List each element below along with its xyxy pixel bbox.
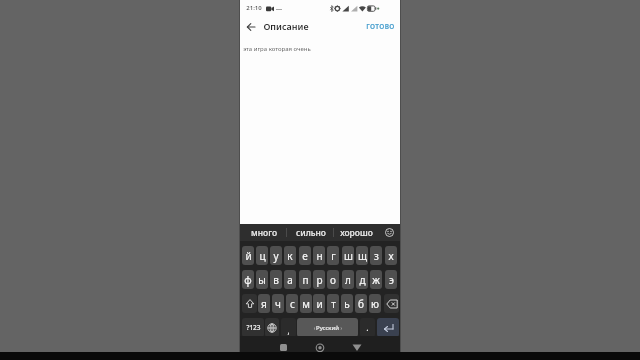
staticText: хорошо: [340, 227, 373, 239]
button[interactable]: р: [313, 270, 325, 289]
button[interactable]: [244, 20, 258, 33]
staticText: ж: [372, 273, 380, 287]
button[interactable]: д: [356, 270, 368, 289]
button[interactable]: и: [313, 294, 325, 313]
button[interactable]: б: [355, 294, 367, 313]
staticText: н: [316, 249, 323, 263]
button[interactable]: [377, 318, 399, 337]
button[interactable]: много: [240, 224, 287, 241]
staticText: я: [261, 297, 267, 311]
staticText: п: [302, 273, 309, 287]
staticText: ?123: [246, 323, 261, 332]
staticText: е: [302, 249, 308, 263]
staticText: .: [366, 321, 369, 333]
staticText: л: [345, 273, 351, 287]
button[interactable]: ‹: [297, 318, 358, 337]
staticText: э: [389, 273, 394, 287]
staticText: ю: [371, 297, 379, 311]
staticText: Описание: [263, 20, 309, 32]
button[interactable]: м: [300, 294, 312, 313]
staticText: з: [374, 249, 379, 263]
button[interactable]: к: [284, 246, 296, 265]
staticText: много: [251, 227, 277, 239]
button[interactable]: н: [313, 246, 325, 265]
staticText: ,: [287, 325, 290, 336]
button[interactable]: й: [242, 246, 254, 265]
button[interactable]: [242, 294, 257, 313]
staticText: сильно: [296, 227, 326, 239]
button[interactable]: л: [342, 270, 354, 289]
button[interactable]: с: [286, 294, 298, 313]
staticText: ч: [275, 297, 281, 311]
staticText: щ: [358, 249, 367, 263]
staticText: ф: [244, 273, 252, 287]
button[interactable]: ?123: [242, 318, 264, 337]
button[interactable]: ,: [281, 318, 296, 337]
button[interactable]: э: [385, 270, 397, 289]
staticText: с: [290, 297, 295, 311]
button[interactable]: г: [327, 246, 339, 265]
button[interactable]: [279, 343, 288, 352]
button[interactable]: хорошо: [333, 224, 380, 241]
button[interactable]: .: [360, 318, 375, 337]
staticText: й: [245, 249, 252, 263]
button[interactable]: о: [327, 270, 339, 289]
staticText: ГОТОВО: [366, 22, 395, 31]
staticText: в: [273, 273, 279, 287]
button[interactable]: [383, 227, 395, 238]
button[interactable]: щ: [356, 246, 368, 265]
staticText: у: [273, 249, 279, 263]
staticText: ш: [344, 249, 353, 263]
button[interactable]: [265, 318, 279, 337]
staticText: г: [331, 249, 336, 263]
button[interactable]: ю: [369, 294, 381, 313]
staticText: ь: [344, 297, 350, 311]
staticText: а: [287, 273, 293, 287]
staticText: ›: [339, 325, 342, 332]
staticText: 21:10: [246, 4, 262, 12]
button[interactable]: ГОТОВО: [362, 19, 398, 33]
button[interactable]: а: [284, 270, 296, 289]
staticText: ц: [259, 249, 266, 263]
staticText: о: [330, 273, 336, 287]
staticText: б: [358, 297, 364, 311]
button[interactable]: сильно: [287, 224, 334, 241]
staticText: ы: [258, 273, 266, 287]
button[interactable]: в: [270, 270, 282, 289]
button[interactable]: п: [299, 270, 311, 289]
staticText: ‹: [313, 325, 316, 332]
button[interactable]: ы: [256, 270, 268, 289]
button[interactable]: ч: [272, 294, 284, 313]
staticText: т: [331, 297, 336, 311]
staticText: р: [316, 273, 323, 287]
staticText: х: [388, 249, 394, 263]
button[interactable]: ш: [342, 246, 354, 265]
staticText: м: [302, 297, 310, 311]
button[interactable]: [384, 294, 399, 313]
staticText: к: [287, 249, 293, 263]
button[interactable]: е: [299, 246, 311, 265]
button[interactable]: ф: [242, 270, 254, 289]
button[interactable]: [352, 344, 362, 352]
staticText: д: [359, 273, 366, 287]
staticText: Русский: [316, 324, 339, 332]
button[interactable]: ц: [256, 246, 268, 265]
button[interactable]: у: [270, 246, 282, 265]
button[interactable]: ж: [370, 270, 382, 289]
button[interactable]: я: [258, 294, 270, 313]
button[interactable]: з: [370, 246, 382, 265]
button[interactable]: ь: [341, 294, 353, 313]
button[interactable]: х: [385, 246, 397, 265]
staticText: и: [316, 297, 323, 311]
staticText: эта игра которая очень: [243, 45, 311, 53]
button[interactable]: т: [327, 294, 339, 313]
button[interactable]: [315, 343, 325, 353]
